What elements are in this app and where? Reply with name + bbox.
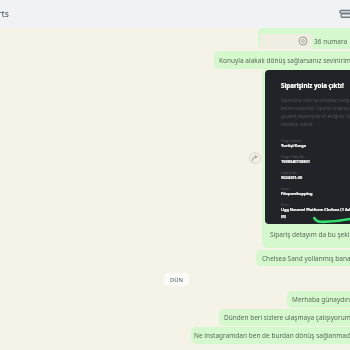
staticText: Yurtiçi Kargo <box>281 143 307 148</box>
staticText: Ürün <box>281 202 289 206</box>
staticText: Ne instagramdan ben de burdan dönüş sağl… <box>194 331 350 340</box>
staticText: Chelsea Sand yollanmış bana <box>262 254 350 263</box>
staticText: Satıcı <box>281 186 290 190</box>
staticText: Kargo Takip No <box>281 154 305 158</box>
button[interactable]: Forward <box>249 152 261 164</box>
staticText: Ugg Neumel Platform Chelsea (1 Adet) (R) <box>281 207 350 219</box>
staticText: 1598940738801 <box>281 159 310 164</box>
staticText: Merhaba günaydın <box>292 295 350 304</box>
staticText: Siparişiniz sizin tarafınızdan kargo şir… <box>281 97 350 127</box>
staticText: Fitsporshopping <box>281 191 313 196</box>
button[interactable]: DÜN <box>164 273 189 286</box>
button[interactable]: Business account <box>337 5 350 22</box>
staticText: 9624251:30 <box>281 175 303 180</box>
staticText: Siparişiniz yola çıktı! <box>281 81 344 89</box>
staticText: DÜN <box>170 276 184 284</box>
button[interactable]: Chelsea Sand yollanmış bana <box>256 250 350 266</box>
staticText: Dünden beri sizlere ulaşmaya çalışıyorum <box>224 313 350 322</box>
button[interactable]: Merhaba günaydın <box>287 291 350 308</box>
staticText: Kargo Şirketi <box>281 138 301 142</box>
staticText: 36 numara <box>314 37 348 46</box>
button[interactable]: Ne instagramdan ben de burdan dönüş sağl… <box>191 327 350 344</box>
button[interactable]: 36 numara <box>258 28 350 49</box>
button[interactable]: Siparişiniz yola çıktı! <box>265 70 350 224</box>
button[interactable]: Sipariş detayım da bu şekilde <box>262 69 350 248</box>
staticText: Konuyla alakalı dönüş sağlarsanız sevini… <box>219 56 350 65</box>
staticText: Sipariş detayım da bu şekilde <box>270 230 350 239</box>
button[interactable]: Dünden beri sizlere ulaşmaya çalışıyorum <box>219 309 350 326</box>
staticText: Sipariş No <box>281 170 297 174</box>
button[interactable]: Konuyla alakalı dönüş sağlarsanız sevini… <box>214 51 350 69</box>
staticText: rts <box>0 8 9 20</box>
